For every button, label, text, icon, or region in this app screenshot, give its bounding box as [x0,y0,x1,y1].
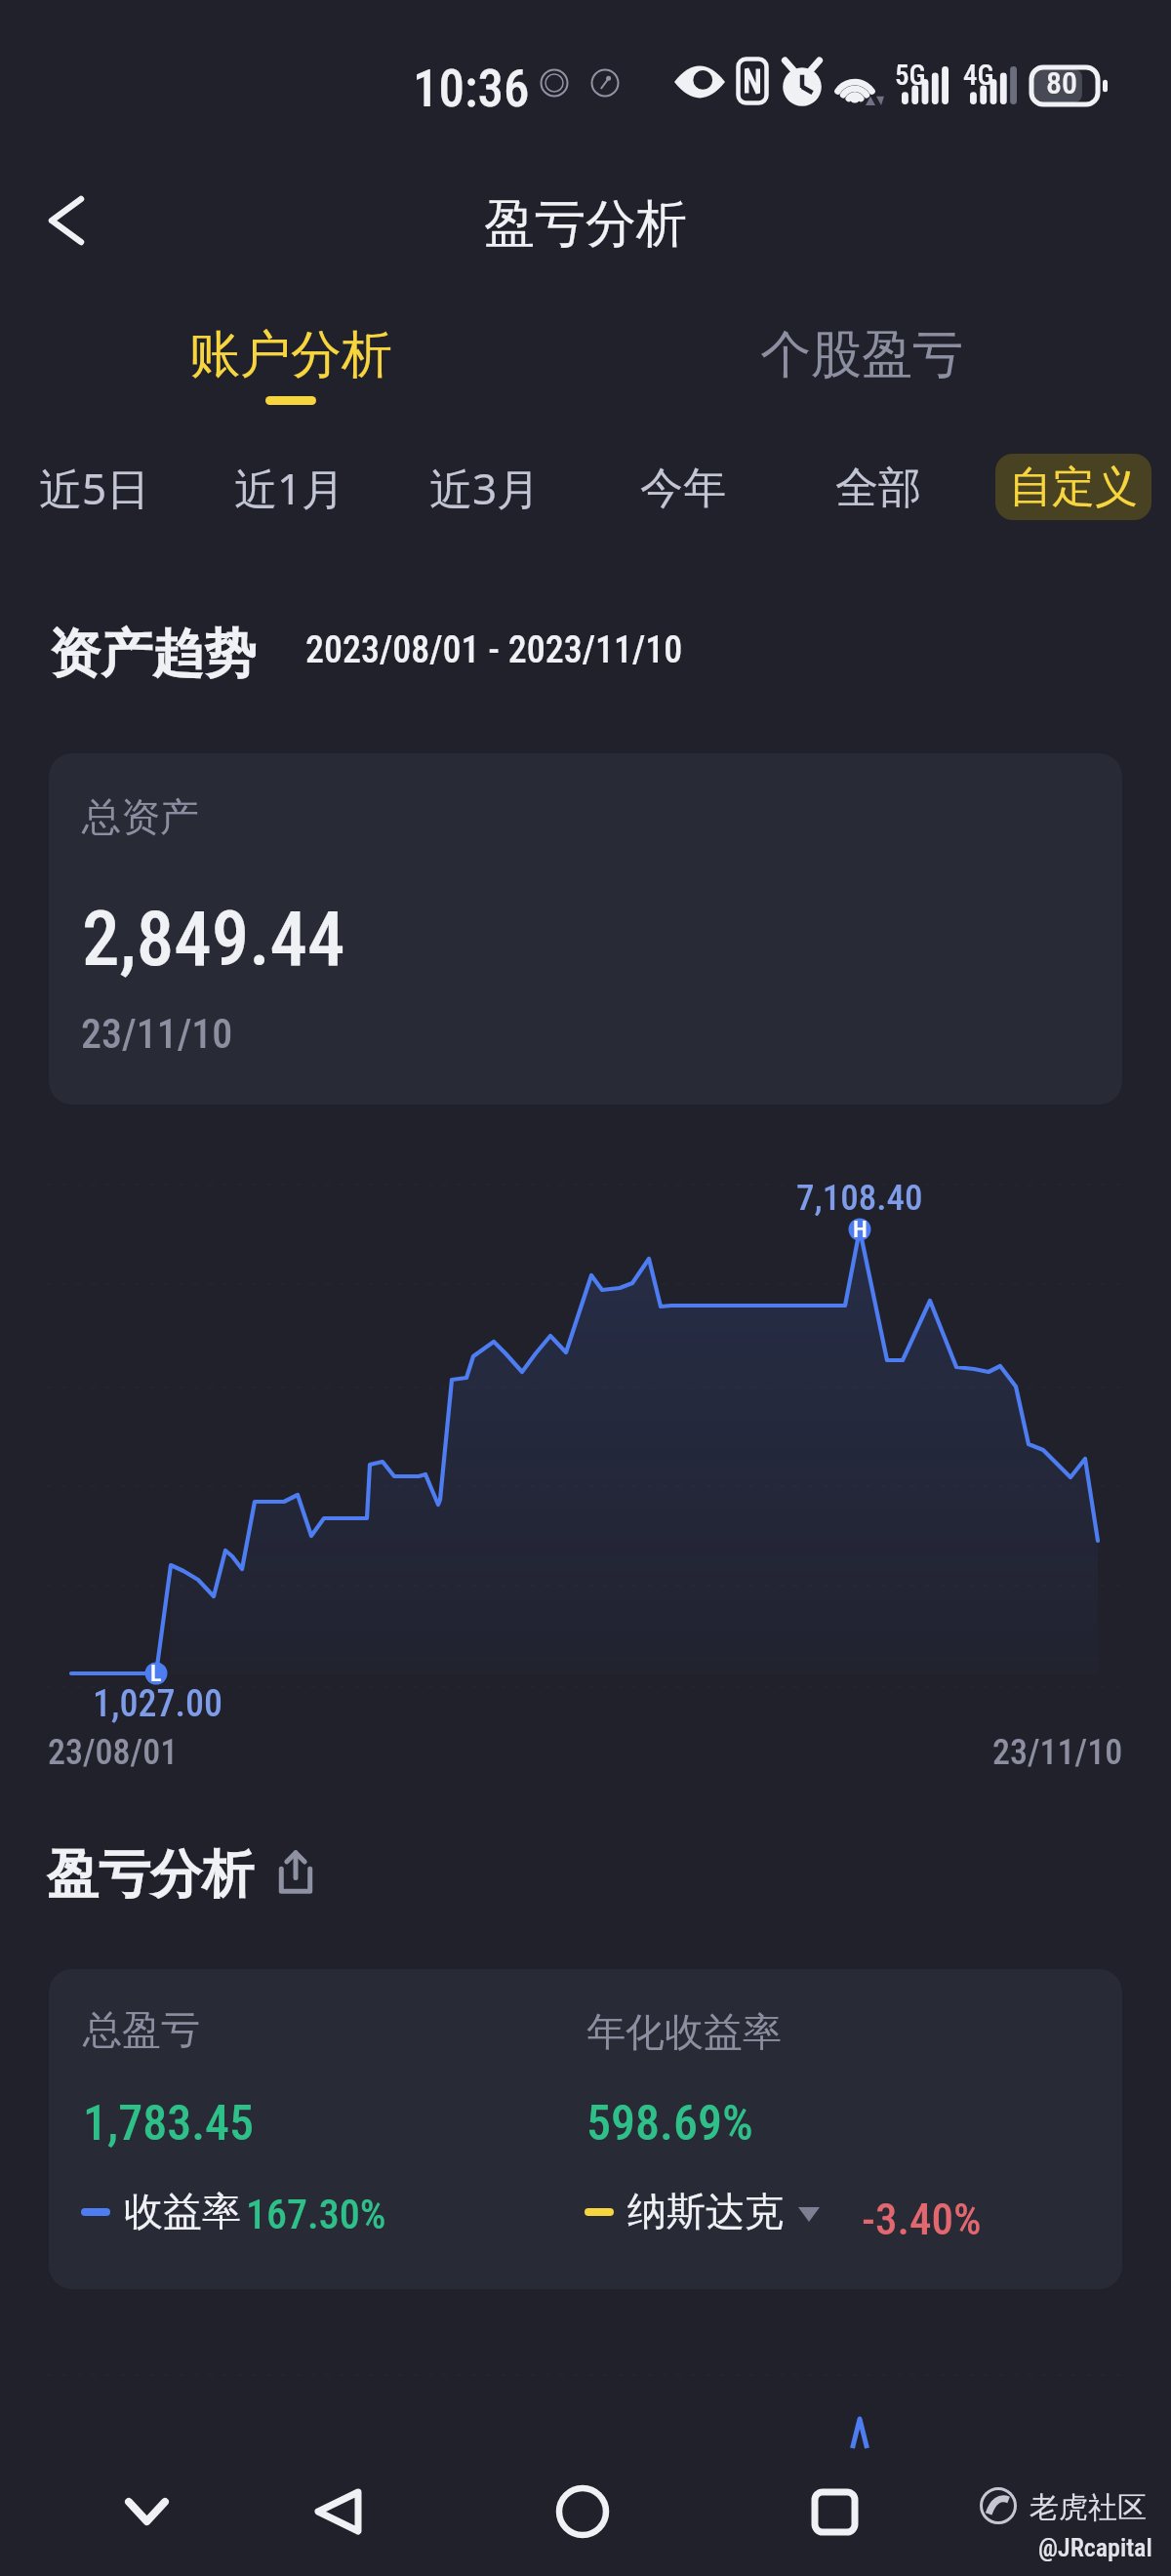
button[interactable]: Hide keyboard [98,2463,195,2560]
staticText: H [853,1216,868,1243]
staticText: 个股盈亏 [760,323,963,387]
staticText: 总盈亏 [83,2005,200,2054]
staticText: 23/11/10 [81,1010,233,1058]
button[interactable]: 全部 [790,441,966,535]
staticText: 今年 [640,462,726,515]
button[interactable] [49,753,1122,1105]
staticText: 2023/08/01 - 2023/11/10 [305,628,683,672]
staticText: 23/11/10 [992,1732,1123,1773]
button[interactable]: 近3月 [397,441,573,535]
staticText: 近3月 [429,459,541,517]
button[interactable]: 今年 [595,441,771,535]
staticText: 80 [1046,64,1077,101]
staticText: 账户分析 [189,323,392,387]
button[interactable]: 近5日 [7,441,182,535]
staticText: @JRcapital [1038,2533,1152,2562]
staticText: 23/08/01 [48,1732,179,1773]
staticText: 盈亏分析 [47,1842,254,1908]
staticText: L [150,1660,162,1687]
staticText: 资产趋势 [49,622,256,687]
button[interactable]: Home [534,2463,631,2560]
staticText: 7,108.40 [796,1177,923,1219]
staticText: 167.30% [246,2191,386,2238]
button[interactable]: Back [289,2463,386,2560]
staticText: 近5日 [39,459,150,517]
staticText: 近1月 [234,459,345,517]
staticText: 收益率 [124,2187,241,2235]
staticText: 年化收益率 [586,2007,782,2056]
button[interactable]: 个股盈亏 [717,310,1005,418]
button[interactable]: 账户分析 [146,310,434,418]
staticText: 1,783.45 [83,2095,255,2153]
staticText: 2,849.44 [82,896,345,984]
staticText: -3.40% [862,2194,982,2245]
button[interactable] [49,1969,1122,2289]
staticText: 盈亏分析 [484,192,687,257]
staticText: 自定义 [1009,461,1138,514]
staticText: 全部 [835,462,921,515]
button[interactable]: Recents [786,2463,883,2560]
button[interactable]: 自定义 [995,454,1151,520]
staticText: 10:36 [413,59,530,119]
button[interactable]: Share [265,1842,326,1903]
staticText: 4G [963,59,994,92]
staticText: 老虎社区 [1030,2489,1147,2526]
staticText: 598.69% [586,2095,753,2153]
staticText: 纳斯达克 [627,2187,784,2235]
button[interactable]: Back [22,177,110,264]
staticText: 1,027.00 [93,1682,223,1726]
staticText: 总资产 [82,792,199,841]
staticText: 5G [895,59,926,92]
button[interactable]: 近1月 [202,441,378,535]
